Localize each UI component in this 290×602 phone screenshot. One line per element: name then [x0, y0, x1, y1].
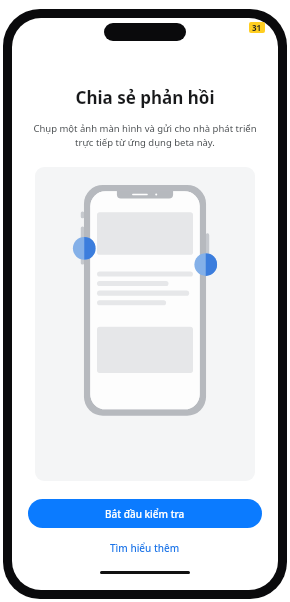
button[interactable]: Bắt đầu kiểm tra	[28, 499, 262, 528]
staticText: 31	[252, 22, 262, 33]
other: Notification count 31	[249, 22, 265, 33]
staticText: Tìm hiểu thêm	[110, 541, 180, 555]
staticText: Bắt đầu kiểm tra	[105, 507, 185, 521]
staticText: Chia sẻ phản hồi	[22, 86, 268, 109]
staticText: Chụp một ảnh màn hình và gửi cho nhà phá…	[26, 122, 264, 149]
button[interactable]: Tìm hiểu thêm	[96, 536, 194, 560]
